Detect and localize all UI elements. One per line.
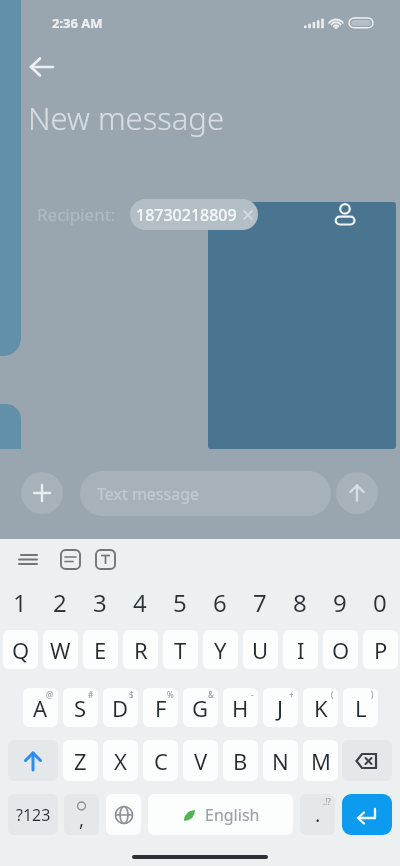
staticText: B (233, 746, 248, 776)
button[interactable]: Z (63, 740, 98, 781)
button[interactable]: P (363, 630, 398, 669)
staticText: D (112, 693, 129, 723)
staticText: R (134, 635, 148, 665)
button[interactable]: D (103, 688, 138, 727)
button[interactable]: 8 (280, 586, 320, 616)
staticText: Y (214, 635, 227, 665)
staticText: , (79, 806, 85, 832)
staticText: K (314, 693, 328, 723)
staticText: ?123 (16, 804, 51, 826)
staticText: . (315, 801, 321, 828)
button[interactable] (342, 794, 392, 835)
button[interactable]: C (143, 740, 178, 781)
button[interactable]: 2 (40, 586, 80, 616)
staticText: G (192, 693, 209, 723)
button[interactable]: N (263, 740, 298, 781)
staticText: H (232, 693, 249, 723)
staticText: U (252, 635, 269, 665)
button[interactable]: 1 (0, 586, 40, 616)
staticText: % (167, 689, 174, 700)
staticText: I (297, 635, 305, 665)
staticText: P (374, 635, 388, 665)
staticText: E (94, 635, 107, 665)
button[interactable]: E (83, 630, 118, 669)
button[interactable]: A (23, 688, 58, 727)
staticText: C (154, 746, 168, 776)
button[interactable]: R (123, 630, 158, 669)
button[interactable]: T (163, 630, 198, 669)
staticText: M (311, 746, 331, 776)
staticText: ( (331, 689, 334, 700)
button[interactable]: F (143, 688, 178, 727)
staticText: V (194, 746, 208, 776)
staticText: 4 (133, 586, 147, 616)
button[interactable] (336, 472, 378, 514)
button[interactable]: I (283, 630, 318, 669)
staticText: 6 (213, 586, 227, 616)
staticText: Q (12, 635, 30, 665)
staticText: Z (74, 746, 87, 776)
staticText: X (114, 746, 127, 776)
staticText: O (332, 635, 350, 665)
staticText: 18730218809 (136, 204, 237, 226)
button[interactable]: H (223, 688, 258, 727)
button[interactable]: , (64, 794, 99, 835)
button[interactable]: . (300, 794, 335, 835)
button[interactable]: 3 (80, 586, 120, 616)
button[interactable] (20, 55, 62, 81)
button[interactable]: 0 (360, 586, 400, 616)
button[interactable] (106, 794, 141, 835)
button[interactable]: U (243, 630, 278, 669)
staticText: New message (28, 97, 225, 139)
staticText: English (205, 804, 260, 826)
button[interactable]: Q (3, 630, 38, 669)
staticText: Recipient: (37, 203, 116, 226)
button[interactable]: 7 (240, 586, 280, 616)
staticText: 7 (253, 586, 267, 616)
staticText: # (88, 689, 94, 700)
button[interactable]: M (303, 740, 338, 781)
button[interactable] (21, 472, 63, 514)
button[interactable]: 18730218809 (130, 199, 258, 230)
staticText: 5 (173, 586, 187, 616)
staticText: & (208, 689, 214, 700)
button[interactable]: Y (203, 630, 238, 669)
button[interactable]: 6 (200, 586, 240, 616)
staticText: 8 (293, 586, 307, 616)
button[interactable]: B (223, 740, 258, 781)
button[interactable]: ?123 (8, 794, 58, 835)
staticText: ) (371, 689, 374, 700)
button[interactable]: S (63, 688, 98, 727)
staticText: J (277, 693, 284, 723)
button[interactable]: J (263, 688, 298, 727)
staticText: L (355, 693, 367, 723)
button[interactable]: 9 (320, 586, 360, 616)
button[interactable] (55, 548, 85, 572)
button[interactable] (342, 740, 392, 781)
button[interactable]: English (148, 794, 293, 835)
button[interactable]: 4 (120, 586, 160, 616)
staticText: A (33, 693, 48, 723)
button[interactable]: V (183, 740, 218, 781)
button[interactable]: K (303, 688, 338, 727)
button[interactable]: W (43, 630, 78, 669)
staticText: 1 (13, 586, 27, 616)
button[interactable]: 5 (160, 586, 200, 616)
staticText: 3 (93, 586, 107, 616)
staticText: T (174, 635, 187, 665)
button[interactable] (90, 548, 120, 572)
staticText: + (289, 689, 294, 700)
button[interactable]: G (183, 688, 218, 727)
staticText: 9 (333, 586, 347, 616)
button[interactable] (13, 548, 43, 572)
staticText: Text message (97, 483, 200, 505)
button[interactable]: L (343, 688, 378, 727)
staticText: .!? (323, 796, 331, 807)
button[interactable]: X (103, 740, 138, 781)
button[interactable] (8, 740, 58, 781)
staticText: - (251, 689, 254, 700)
button[interactable]: O (323, 630, 358, 669)
staticText: 2:36 AM (52, 14, 103, 32)
button[interactable] (330, 196, 362, 230)
button[interactable]: Text message (80, 471, 331, 516)
